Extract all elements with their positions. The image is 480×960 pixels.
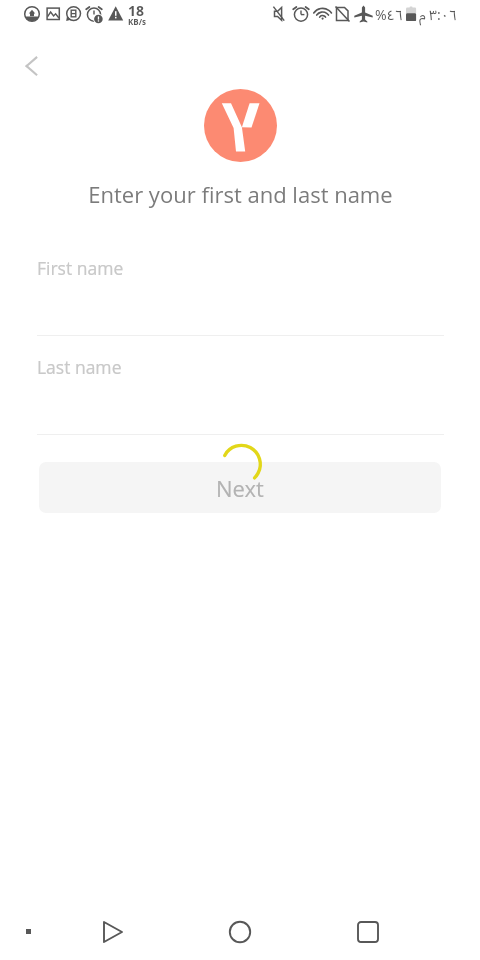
staticText: م: [419, 1, 426, 31]
button[interactable]: Recent apps: [346, 910, 390, 954]
button[interactable]: Next: [39, 462, 441, 513]
staticText: KB/s: [128, 16, 146, 27]
staticText: Last name: [37, 355, 122, 379]
staticText: First name: [37, 256, 124, 280]
button[interactable]: Back: [8, 44, 54, 90]
staticText: Next: [216, 473, 264, 503]
staticText: ٣:٠٦: [429, 1, 457, 31]
button[interactable]: More options: [10, 913, 47, 950]
staticText: Enter your first and last name: [88, 179, 393, 209]
staticText: %٤٦: [375, 1, 403, 31]
staticText: 18: [128, 1, 144, 20]
button[interactable]: Home: [218, 910, 262, 954]
button[interactable]: Back: [91, 910, 135, 954]
